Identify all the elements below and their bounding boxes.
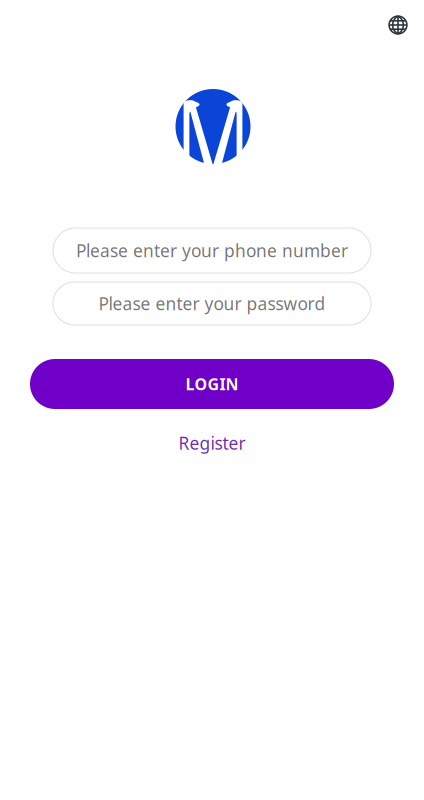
staticText: LOGIN bbox=[185, 373, 238, 395]
button[interactable]: Register bbox=[157, 428, 267, 458]
button[interactable]: LOGIN bbox=[30, 359, 394, 409]
staticText: Register bbox=[178, 431, 245, 454]
staticText: Please enter your phone number bbox=[76, 239, 348, 262]
staticText: Please enter your password bbox=[98, 292, 325, 315]
button[interactable]: Language bbox=[376, 3, 420, 47]
